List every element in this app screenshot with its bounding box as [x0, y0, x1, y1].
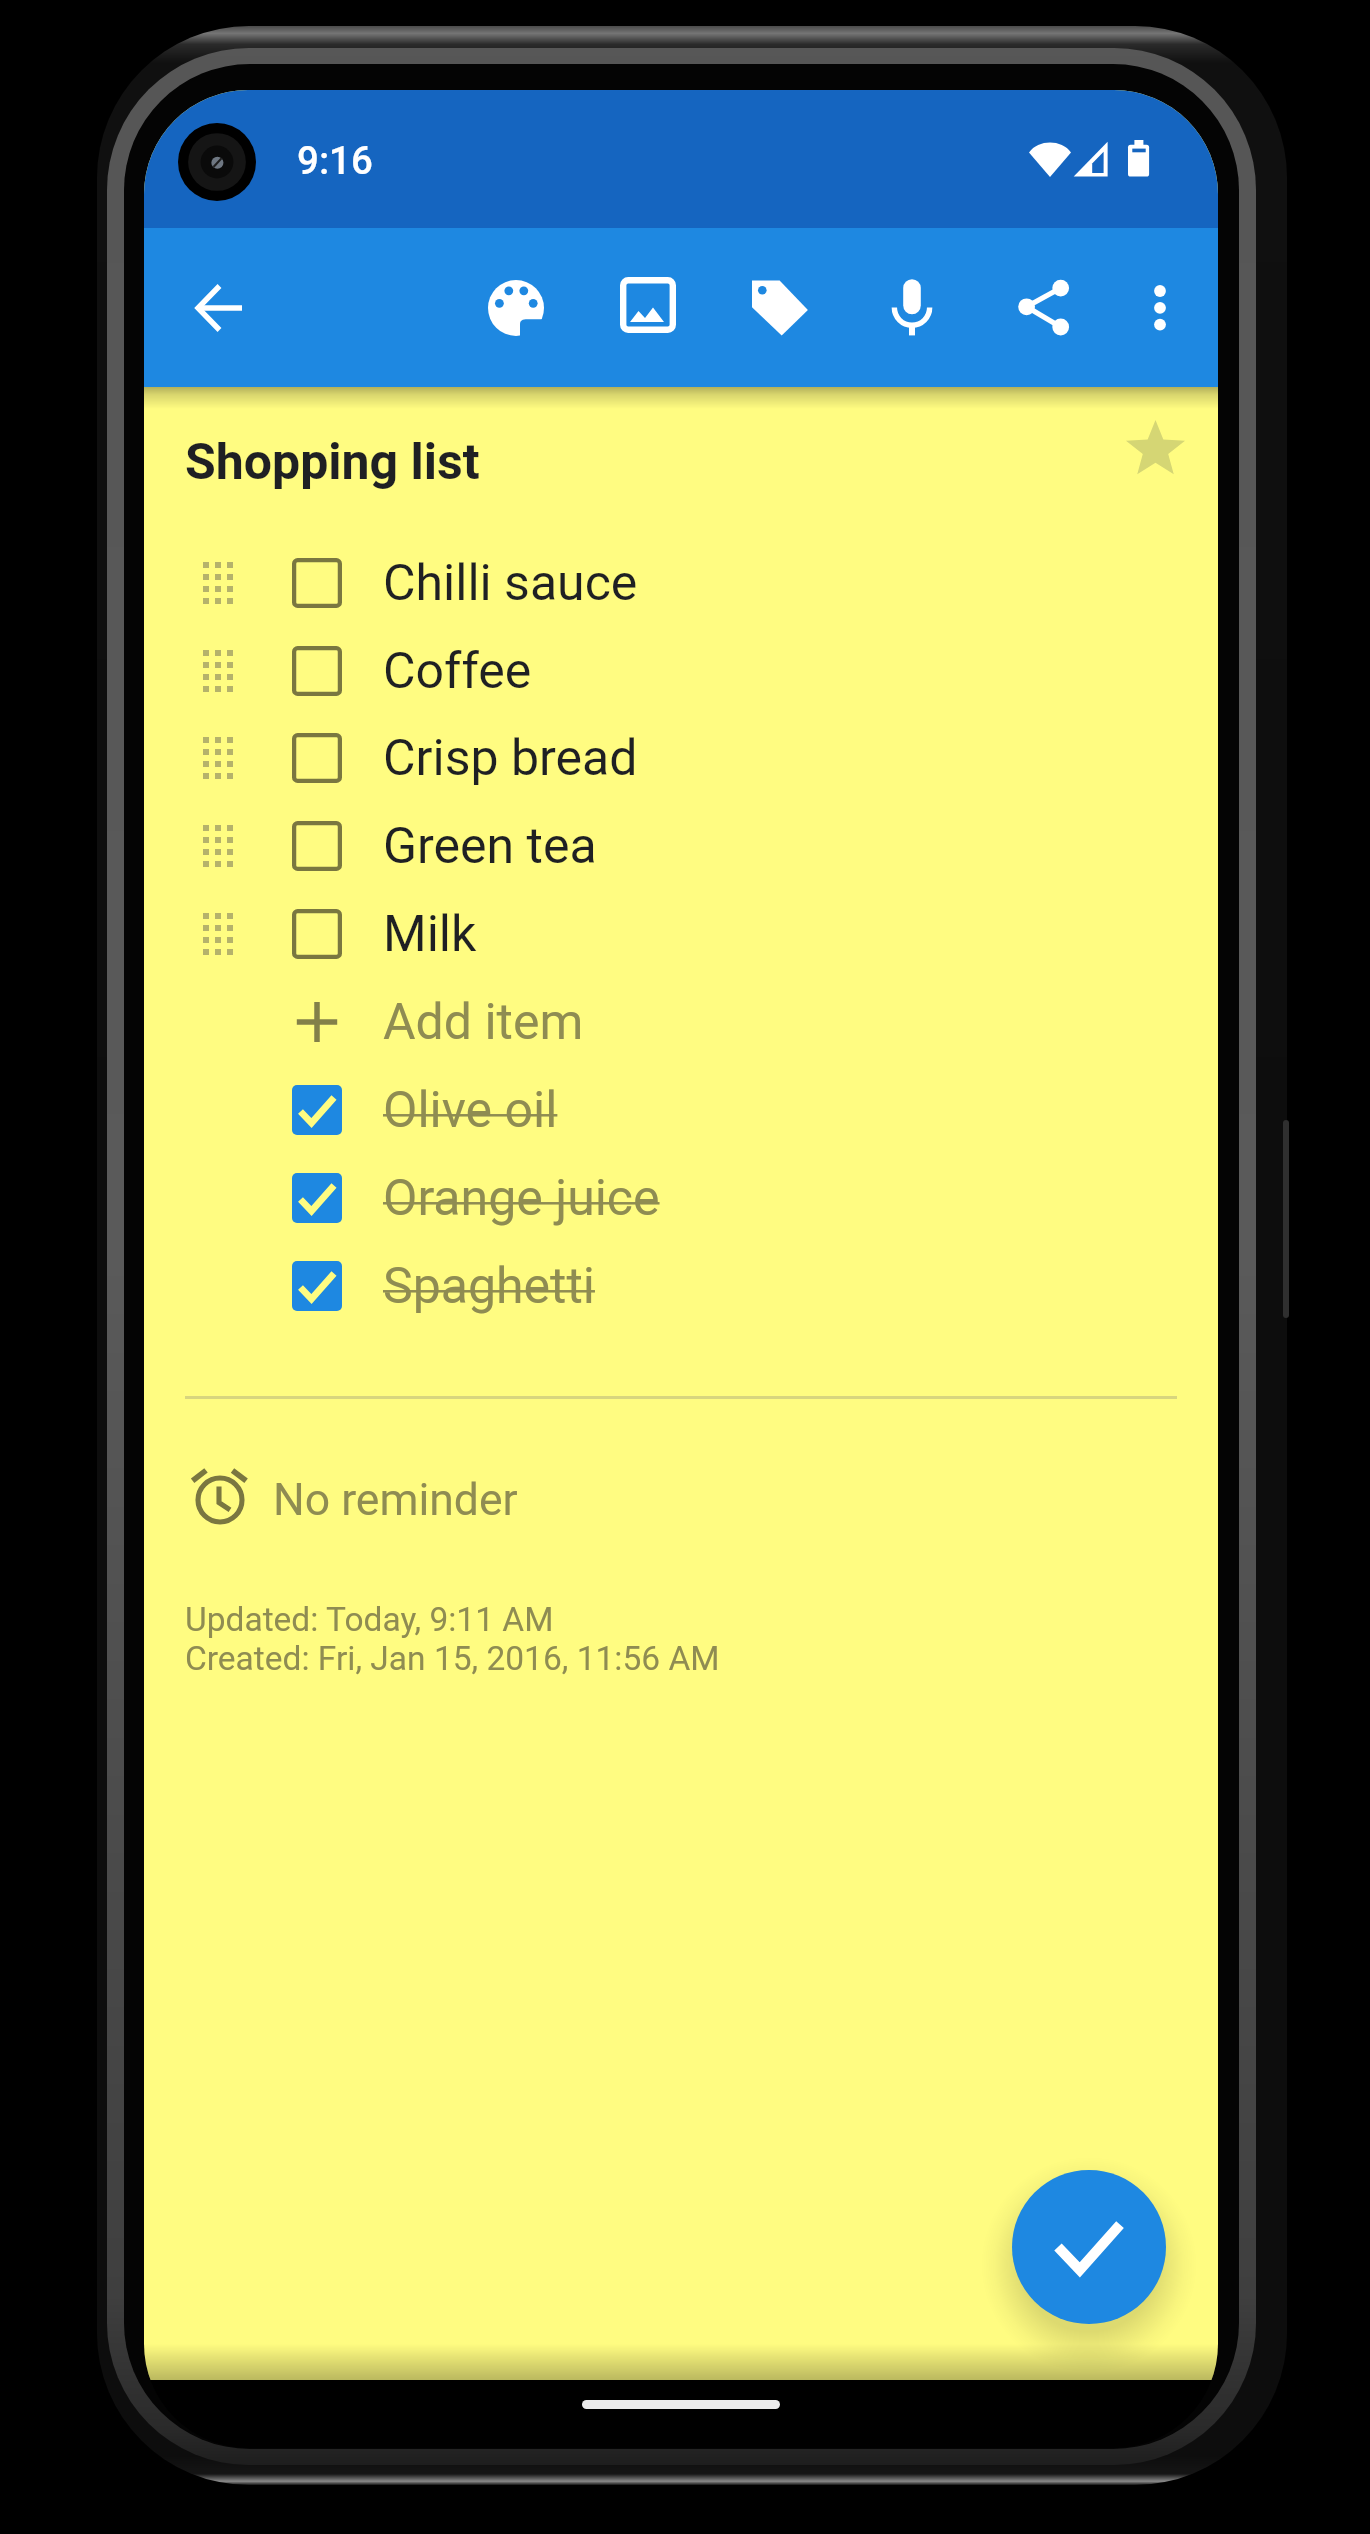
button[interactable]: Orange juice — [144, 1154, 1218, 1242]
staticText: Updated: Today, 9:11 AM — [185, 1600, 554, 1639]
button[interactable]: Coffee — [144, 627, 1218, 715]
staticText: Chilli sauce — [383, 554, 638, 613]
staticText: Olive oil — [383, 1081, 558, 1140]
staticText: Spaghetti — [383, 1257, 595, 1316]
staticText: Orange juice — [383, 1169, 660, 1228]
button[interactable]: Add image — [592, 252, 704, 364]
button[interactable]: Shopping list — [185, 421, 1065, 505]
button[interactable]: Save note — [1012, 2170, 1166, 2324]
button[interactable]: Chilli sauce — [144, 539, 1218, 627]
staticText: Created: Fri, Jan 15, 2016, 11:56 AM — [185, 1639, 720, 1678]
button[interactable]: More options — [1104, 252, 1216, 364]
button[interactable]: Green tea — [144, 802, 1218, 890]
button[interactable]: Crisp bread — [144, 714, 1218, 802]
staticText: Green tea — [383, 817, 597, 876]
button[interactable]: Olive oil — [144, 1066, 1218, 1154]
staticText: Shopping list — [185, 433, 480, 492]
staticText: 9:16 — [297, 138, 373, 183]
staticText: Crisp bread — [383, 729, 638, 788]
button[interactable]: Add item — [144, 978, 1218, 1066]
button[interactable]: Labels — [724, 252, 836, 364]
button[interactable]: Milk — [144, 890, 1218, 978]
button[interactable]: Voice note — [856, 252, 968, 364]
button[interactable]: Share — [988, 252, 1100, 364]
button[interactable]: Star note — [1111, 403, 1199, 491]
staticText: No reminder — [273, 1474, 518, 1526]
staticText: Coffee — [383, 642, 532, 701]
staticText: Milk — [383, 905, 477, 964]
button[interactable]: Spaghetti — [144, 1242, 1218, 1330]
button[interactable]: Change colour — [460, 252, 572, 364]
button[interactable]: Back — [164, 252, 276, 364]
staticText: Add item — [383, 993, 584, 1052]
button[interactable]: No reminder — [172, 1456, 592, 1544]
